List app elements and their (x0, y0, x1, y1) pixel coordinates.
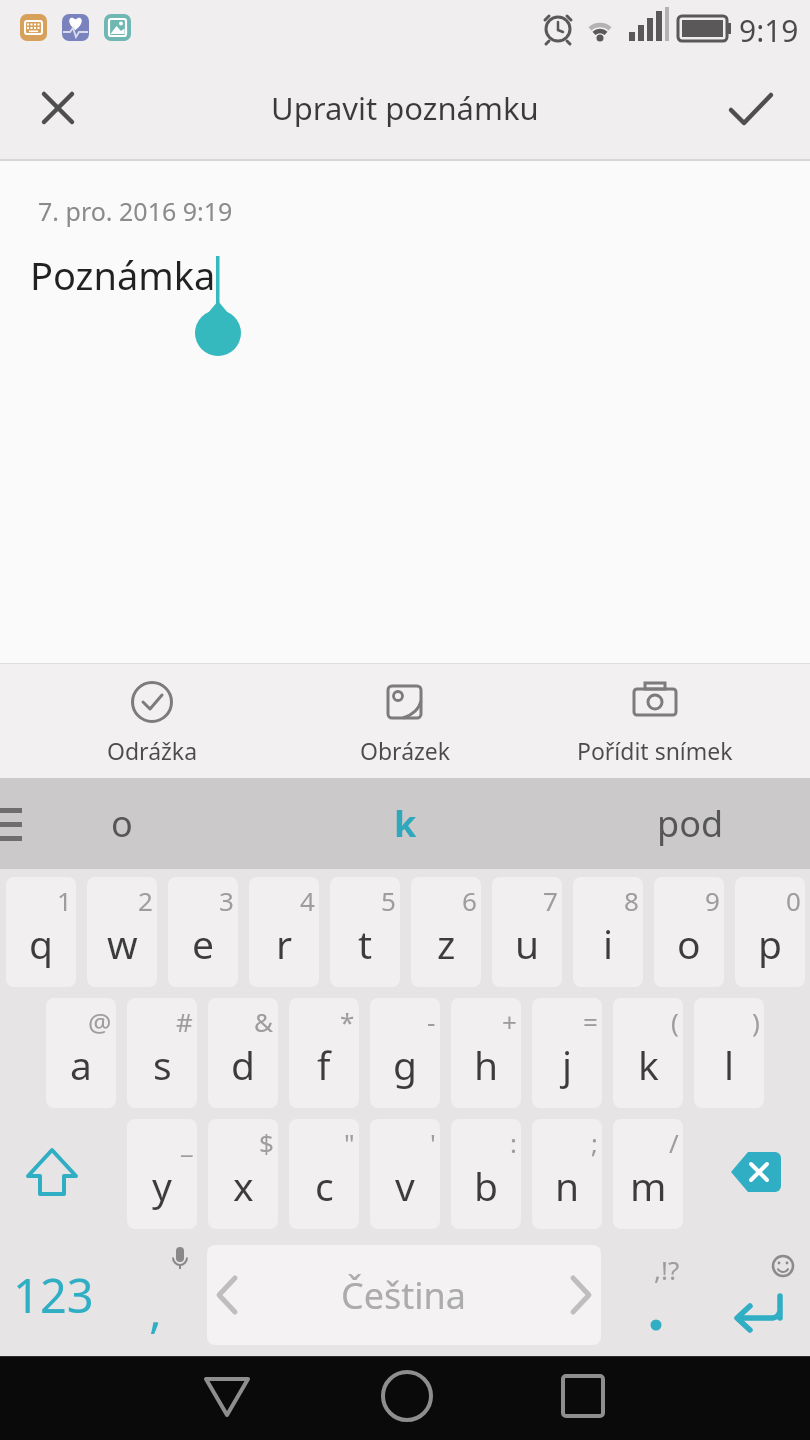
staticText: n (555, 1159, 580, 1212)
staticText: * (340, 1004, 355, 1039)
button[interactable]: k (613, 998, 683, 1108)
button[interactable]: , (110, 1240, 200, 1350)
button[interactable] (710, 1124, 805, 1224)
staticText: y (152, 1159, 172, 1212)
staticText: 8 (624, 883, 639, 918)
staticText: j (562, 1038, 573, 1091)
staticText: a (70, 1038, 92, 1091)
staticText: s (153, 1038, 172, 1091)
staticText: k (394, 799, 417, 848)
staticText: f (317, 1038, 331, 1091)
button[interactable] (367, 1358, 447, 1438)
staticText: # (176, 1004, 193, 1039)
staticText: 7 (543, 883, 558, 918)
button[interactable]: pod (600, 778, 780, 869)
staticText: = (583, 1004, 598, 1039)
button[interactable]: t (330, 877, 400, 987)
staticText: 0 (786, 883, 801, 918)
staticText: q (29, 917, 53, 970)
staticText: e (192, 917, 214, 970)
button[interactable] (721, 78, 781, 138)
staticText: l (724, 1038, 735, 1091)
staticText: o (111, 799, 133, 848)
staticText: 5 (381, 883, 396, 918)
button[interactable] (543, 1358, 623, 1438)
button[interactable]: i (573, 877, 643, 987)
button[interactable]: c (289, 1119, 359, 1229)
staticText: Upravit poznámku (271, 87, 539, 129)
button[interactable]: x (208, 1119, 278, 1229)
staticText: / (669, 1125, 679, 1160)
staticText: $ (259, 1125, 274, 1160)
staticText: v (395, 1159, 415, 1212)
staticText: b (474, 1159, 498, 1212)
button[interactable]: f (289, 998, 359, 1108)
staticText: u (515, 917, 540, 970)
button[interactable]: p (735, 877, 805, 987)
staticText: _ (181, 1125, 193, 1160)
button[interactable]: k (315, 778, 495, 869)
staticText: , (149, 1277, 162, 1342)
button[interactable]: l (694, 998, 764, 1108)
button[interactable]: Čeština (207, 1245, 601, 1345)
staticText: Pořídit snímek (577, 735, 733, 766)
staticText: ,!? (654, 1252, 680, 1287)
staticText: 1 (57, 883, 72, 918)
button[interactable]: Obrázek (295, 671, 515, 771)
staticText: Odrážka (107, 735, 198, 766)
button[interactable]: r (249, 877, 319, 987)
staticText: 9:19 (739, 10, 799, 51)
button[interactable] (187, 1358, 267, 1438)
button[interactable]: q (6, 877, 76, 987)
staticText: m (630, 1159, 667, 1212)
staticText: 4 (300, 883, 315, 918)
button[interactable]: d (208, 998, 278, 1108)
staticText: - (427, 1004, 436, 1039)
button[interactable]: o (654, 877, 724, 987)
staticText: & (254, 1004, 274, 1039)
staticText: g (393, 1038, 417, 1091)
button[interactable]: j (532, 998, 602, 1108)
button[interactable]: s (127, 998, 197, 1108)
staticText: ; (591, 1125, 598, 1160)
staticText: + (502, 1004, 517, 1039)
button[interactable]: v (370, 1119, 440, 1229)
button[interactable]: o (32, 778, 212, 869)
staticText: Čeština (341, 1271, 467, 1320)
staticText: 9 (705, 883, 720, 918)
staticText: ( (671, 1004, 679, 1039)
button[interactable] (28, 78, 88, 138)
button[interactable]: w (87, 877, 157, 987)
button[interactable]: 123 (8, 1240, 98, 1350)
button[interactable]: n (532, 1119, 602, 1229)
staticText: d (231, 1038, 255, 1091)
button[interactable]: z (411, 877, 481, 987)
button[interactable]: Pořídit snímek (545, 671, 765, 771)
button[interactable]: Odrážka (42, 671, 262, 771)
staticText: h (474, 1038, 499, 1091)
staticText: Obrázek (360, 735, 451, 766)
button[interactable]: g (370, 998, 440, 1108)
staticText: r (276, 917, 293, 970)
button[interactable]: m (613, 1119, 683, 1229)
staticText: 3 (219, 883, 234, 918)
staticText: p (758, 917, 782, 970)
staticText: 123 (13, 1263, 94, 1327)
staticText: w (107, 917, 138, 970)
staticText: z (437, 917, 456, 970)
button[interactable] (10, 1124, 100, 1224)
staticText: @ (88, 1004, 112, 1039)
button[interactable]: e (168, 877, 238, 987)
staticText: i (603, 917, 614, 970)
staticText: Poznámka (30, 249, 216, 301)
staticText: t (358, 917, 373, 970)
button[interactable]: ,!? (611, 1240, 701, 1350)
button[interactable]: y (127, 1119, 197, 1229)
staticText: " (344, 1125, 355, 1160)
staticText: : (510, 1125, 517, 1160)
button[interactable]: a (46, 998, 116, 1108)
button[interactable]: h (451, 998, 521, 1108)
button[interactable]: b (451, 1119, 521, 1229)
button[interactable]: u (492, 877, 562, 987)
button[interactable] (711, 1240, 806, 1350)
